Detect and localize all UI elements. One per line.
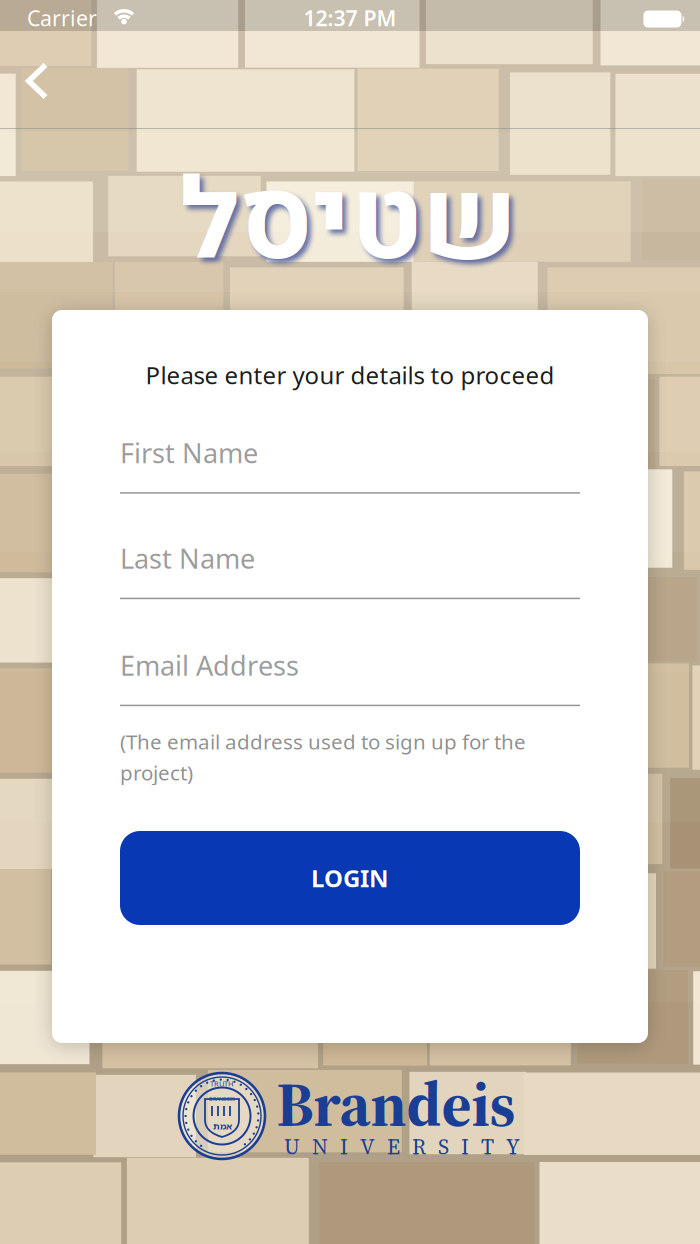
staticText: BRANDEIS [209,1095,235,1103]
staticText: LOGIN [311,862,389,894]
button[interactable]: LOGIN [120,831,580,925]
staticText: אמת [212,1120,231,1132]
button[interactable]: Email Address [120,647,580,706]
staticText: 12:37 PM [303,3,396,33]
button[interactable]: First Name [120,434,580,494]
staticText: TRUTH [210,1078,234,1089]
button[interactable]: Back [11,50,62,112]
staticText: Carrier [27,3,97,33]
staticText: שטיסל [179,141,517,305]
staticText: Last Name [120,540,255,577]
staticText: Email Address [120,647,299,684]
staticText: UNIVERSITY [284,1133,520,1161]
staticText: Please enter your details to proceed [145,359,554,391]
staticText: Brandeis [276,1061,515,1146]
button[interactable]: Last Name [120,540,580,599]
staticText: (The email address used to sign up for t… [120,727,526,786]
staticText: First Name [120,434,258,471]
